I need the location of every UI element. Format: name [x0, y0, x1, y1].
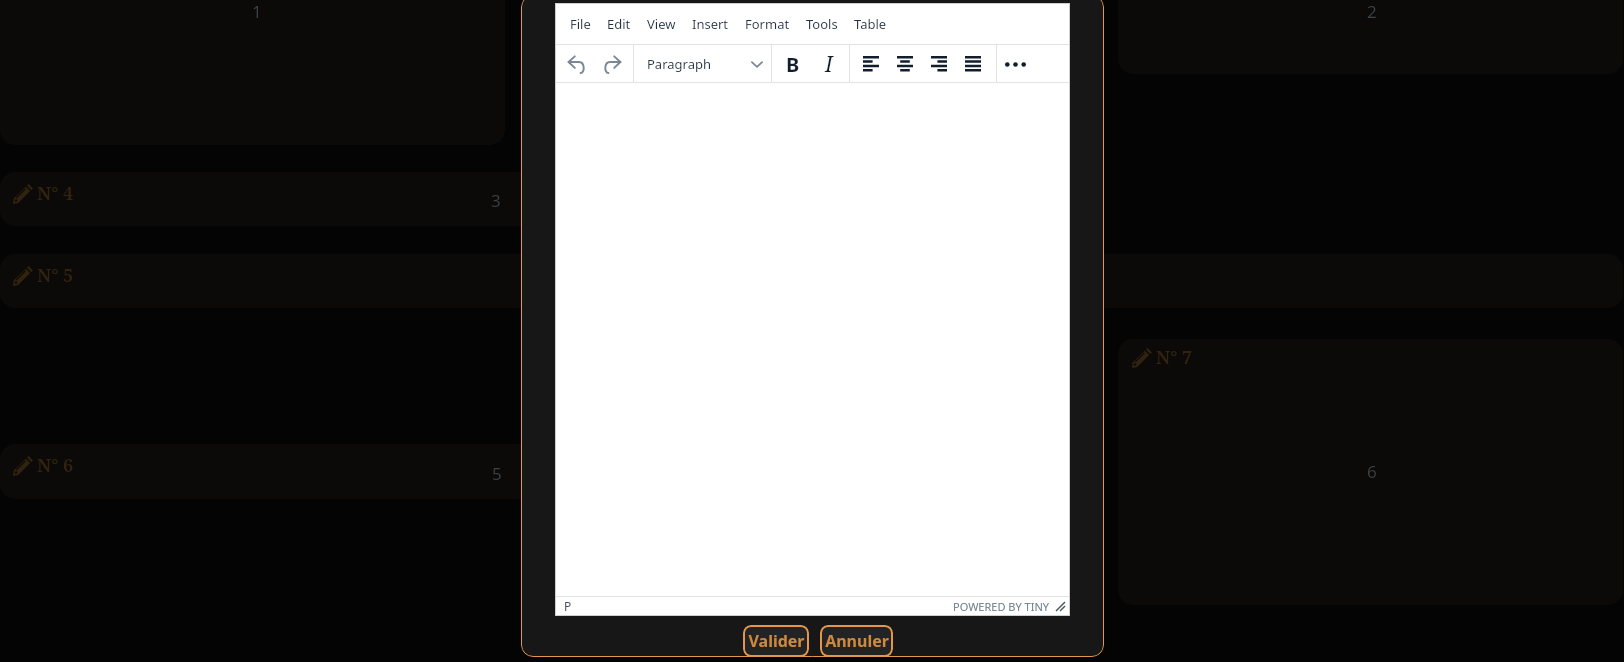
button[interactable]: Table	[847, 10, 894, 38]
other: Edit	[13, 266, 33, 286]
button[interactable]: Bold	[778, 49, 808, 79]
button[interactable]: Align center	[890, 49, 920, 79]
button[interactable]: File	[563, 10, 598, 38]
button[interactable]: More options	[1000, 49, 1030, 79]
staticText: Valider	[748, 630, 805, 652]
button[interactable]: Justify	[958, 49, 988, 79]
other: Edit	[1132, 348, 1152, 368]
staticText: Edit	[607, 15, 631, 33]
button[interactable]: Align right	[924, 49, 954, 79]
staticText: 2	[1367, 0, 1377, 23]
staticText: File	[570, 15, 591, 33]
button[interactable]	[0, 172, 1064, 226]
staticText: P	[564, 598, 572, 614]
button[interactable]: View	[640, 10, 683, 38]
button[interactable]: Redo	[597, 49, 627, 79]
button[interactable]: Insert	[685, 10, 736, 38]
staticText: 5	[492, 462, 502, 485]
button[interactable]: Format	[738, 10, 797, 38]
staticText: View	[647, 15, 676, 33]
button[interactable]: Undo	[561, 49, 591, 79]
staticText: Insert	[692, 15, 729, 33]
staticText: 3	[491, 189, 501, 212]
staticText: Tools	[806, 15, 838, 33]
staticText: 6	[1367, 460, 1377, 483]
staticText: Table	[854, 15, 887, 33]
staticText: Paragraph	[647, 55, 711, 73]
button[interactable]: Tools	[799, 10, 845, 38]
button[interactable]: Edit	[1132, 345, 1193, 370]
staticText: Format	[745, 15, 790, 33]
staticText: N° 4	[37, 181, 74, 206]
button[interactable]: Italic	[814, 49, 844, 79]
button[interactable]: Edit	[13, 181, 74, 206]
staticText: Annuler	[825, 630, 889, 652]
staticText: N° 6	[37, 453, 74, 478]
staticText: POWERED BY TINY	[953, 599, 1049, 614]
button[interactable]	[0, 254, 1623, 308]
button[interactable]: Edit	[13, 263, 74, 288]
button[interactable]: Edit	[13, 453, 74, 478]
other: Edit	[13, 184, 33, 204]
staticText: N° 5	[37, 263, 74, 288]
button[interactable]: Annuler	[820, 625, 893, 657]
button[interactable]: Align left	[856, 49, 886, 79]
staticText: I	[825, 50, 833, 79]
other: Edit	[13, 456, 33, 476]
staticText: 1	[252, 0, 262, 23]
staticText: N° 7	[1156, 345, 1193, 370]
button[interactable]: Valider	[743, 625, 809, 657]
button[interactable]: Edit	[600, 10, 638, 38]
button[interactable]	[0, 444, 1064, 499]
staticText: B	[786, 51, 800, 78]
button[interactable]: Paragraph	[634, 45, 771, 82]
